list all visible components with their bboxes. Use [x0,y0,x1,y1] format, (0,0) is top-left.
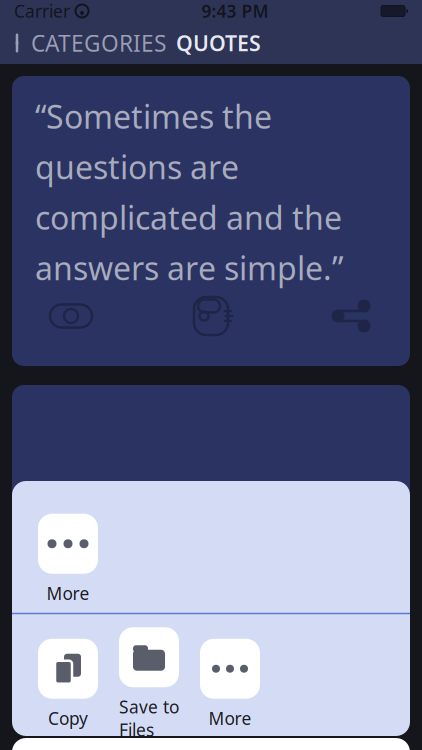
staticText: Save to Files [119,695,179,741]
button[interactable]: More [38,514,98,605]
staticText: QUOTES [176,29,261,57]
button[interactable]: Cancel [12,738,410,750]
button[interactable]: CATEGORIES [0,20,166,66]
button[interactable]: Speak [166,289,256,343]
staticText: “Sometimes the questions are complicated… [35,95,343,289]
staticText: Copy [48,707,88,730]
staticText: 9:43 PM [201,0,268,22]
button[interactable]: View [26,289,116,343]
button[interactable]: More [200,639,260,730]
staticText: More [208,707,251,730]
staticText: More [46,582,89,605]
button[interactable]: Save to Files [119,627,179,741]
staticText: Carrier [14,0,70,22]
staticText: CATEGORIES [31,28,166,58]
button[interactable]: Share [306,289,396,343]
button[interactable]: Copy [38,639,98,730]
